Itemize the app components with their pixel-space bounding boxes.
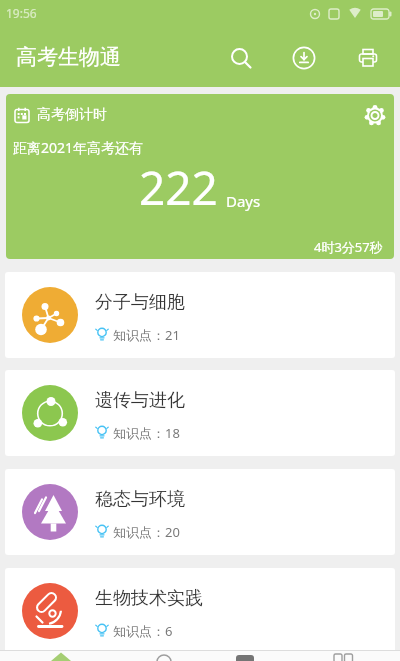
staticText: 生物技术实践 [95,587,203,610]
staticText: 知识点：20 [113,523,180,541]
button[interactable] [229,46,253,70]
button[interactable] [363,103,387,127]
button[interactable] [356,46,380,70]
staticText: 知识点：6 [113,622,173,640]
staticText: Days [226,191,261,211]
staticText: 遗传与进化 [95,389,185,412]
button[interactable] [293,47,315,69]
staticText: 分子与细胞 [95,291,185,314]
staticText: 4时3分57秒 [314,238,383,256]
button[interactable]: 生物技术实践 [5,568,395,654]
staticText: 距离2021年高考还有 [13,138,144,157]
staticText: 知识点：21 [113,326,180,344]
staticText: 稳态与环境 [95,488,185,511]
button[interactable]: 稳态与环境 [5,469,395,555]
button[interactable]: 分子与细胞 [5,272,395,358]
staticText: 知识点：18 [113,424,180,442]
button[interactable]: 遗传与进化 [5,370,395,456]
button[interactable]: 高考倒计时 [6,94,394,259]
staticText: 高考倒计时 [37,106,107,124]
staticText: 19:56 [6,5,37,21]
staticText: 222 [139,156,218,219]
staticText: 高考生物通 [16,44,121,70]
